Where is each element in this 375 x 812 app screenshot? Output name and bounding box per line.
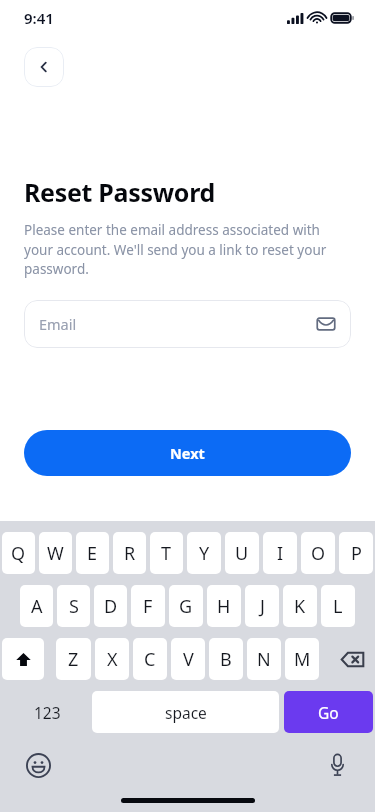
- button[interactable]: Backspace: [331, 638, 373, 680]
- staticText: P: [351, 541, 362, 566]
- staticText: F: [143, 594, 153, 619]
- button[interactable]: Voice input: [321, 749, 353, 781]
- button[interactable]: G: [169, 585, 203, 627]
- button[interactable]: I: [263, 532, 297, 574]
- staticText: T: [161, 541, 172, 566]
- button[interactable]: Back: [24, 47, 64, 87]
- button[interactable]: D: [94, 585, 127, 627]
- staticText: 123: [34, 702, 61, 723]
- button[interactable]: C: [133, 638, 167, 680]
- button[interactable]: space: [92, 691, 279, 733]
- button[interactable]: H: [207, 585, 241, 627]
- button[interactable]: L: [321, 585, 355, 627]
- staticText: V: [183, 647, 194, 672]
- button[interactable]: Shift: [2, 638, 44, 680]
- button[interactable]: S: [57, 585, 90, 627]
- staticText: R: [124, 541, 136, 566]
- staticText: Please enter the email address associate…: [24, 221, 351, 278]
- button[interactable]: V: [171, 638, 205, 680]
- button[interactable]: P: [339, 532, 373, 574]
- button[interactable]: Q: [2, 532, 35, 574]
- button[interactable]: Emoji: [22, 749, 54, 781]
- button[interactable]: J: [245, 585, 279, 627]
- button[interactable]: K: [283, 585, 317, 627]
- staticText: W: [47, 541, 64, 566]
- staticText: M: [294, 647, 311, 672]
- staticText: Reset Password: [24, 175, 216, 209]
- staticText: L: [333, 594, 343, 619]
- staticText: C: [144, 647, 156, 672]
- button[interactable]: Go: [284, 691, 373, 733]
- staticText: 9:41: [24, 8, 54, 28]
- button[interactable]: A: [20, 585, 53, 627]
- staticText: U: [235, 541, 249, 566]
- staticText: D: [104, 594, 118, 619]
- button[interactable]: O: [301, 532, 335, 574]
- staticText: Z: [68, 647, 79, 672]
- staticText: X: [107, 647, 118, 672]
- staticText: S: [69, 594, 79, 619]
- staticText: G: [179, 594, 193, 619]
- staticText: N: [257, 647, 271, 672]
- button[interactable]: 123: [2, 691, 92, 733]
- staticText: J: [260, 594, 265, 619]
- button[interactable]: U: [225, 532, 259, 574]
- staticText: Go: [318, 702, 339, 723]
- staticText: A: [31, 594, 43, 619]
- staticText: Next: [170, 443, 205, 463]
- button[interactable]: X: [95, 638, 129, 680]
- button[interactable]: Next: [24, 430, 351, 476]
- button[interactable]: R: [113, 532, 146, 574]
- staticText: K: [294, 594, 306, 619]
- button[interactable]: E: [76, 532, 109, 574]
- staticText: H: [217, 594, 231, 619]
- button[interactable]: W: [39, 532, 72, 574]
- staticText: O: [311, 541, 326, 566]
- button[interactable]: T: [150, 532, 183, 574]
- staticText: Q: [11, 541, 26, 566]
- button[interactable]: Z: [56, 638, 91, 680]
- staticText: E: [87, 541, 98, 566]
- staticText: Y: [199, 541, 210, 566]
- staticText: space: [165, 702, 207, 723]
- button[interactable]: Y: [187, 532, 221, 574]
- staticText: Email: [39, 314, 316, 334]
- button[interactable]: B: [209, 638, 243, 680]
- staticText: B: [220, 647, 232, 672]
- button[interactable]: M: [285, 638, 319, 680]
- button[interactable]: F: [131, 585, 165, 627]
- button[interactable]: Email: [24, 300, 351, 348]
- staticText: I: [277, 541, 284, 566]
- button[interactable]: N: [247, 638, 281, 680]
